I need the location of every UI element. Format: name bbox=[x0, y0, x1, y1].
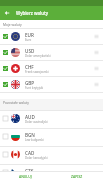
staticText: CHF bbox=[25, 64, 34, 70]
button[interactable]: Back bbox=[0, 6, 14, 20]
staticText: Frank szwajcarski bbox=[25, 70, 49, 74]
staticText: Funt brytyjski bbox=[25, 86, 44, 90]
staticText: Pozostałe waluty bbox=[3, 100, 29, 104]
staticText: AUD bbox=[25, 114, 35, 120]
button[interactable]: ANULUJ bbox=[0, 172, 51, 180]
staticText: ANULUJ bbox=[19, 174, 32, 179]
staticText: Dolar amerykański bbox=[25, 54, 51, 58]
staticText: USD bbox=[25, 48, 35, 54]
staticText: BGN bbox=[25, 132, 35, 138]
staticText: Korona czeska bbox=[25, 174, 45, 178]
staticText: EUR bbox=[25, 32, 34, 38]
button[interactable]: ZAPISZ bbox=[51, 172, 103, 180]
staticText: CAD bbox=[25, 150, 35, 156]
button[interactable]: CHF bbox=[0, 61, 103, 76]
staticText: Lew bułgarski bbox=[25, 138, 44, 142]
button[interactable]: AUD bbox=[0, 111, 103, 128]
button[interactable]: BGN bbox=[0, 129, 103, 146]
staticText: Euro bbox=[25, 38, 32, 42]
button[interactable]: CZK bbox=[0, 165, 103, 182]
staticText: CZK bbox=[25, 168, 34, 174]
staticText: Dolar australijski bbox=[25, 120, 48, 124]
staticText: GBP bbox=[25, 80, 35, 86]
staticText: Wybierz waluty bbox=[16, 10, 48, 16]
staticText: Dolar kanadyjski bbox=[25, 156, 48, 160]
staticText: Moje waluty bbox=[3, 22, 22, 26]
button[interactable]: GBP bbox=[0, 77, 103, 92]
button[interactable]: CAD bbox=[0, 147, 103, 164]
button[interactable]: USD bbox=[0, 45, 103, 60]
staticText: ZAPISZ bbox=[71, 174, 83, 179]
button[interactable]: EUR bbox=[0, 29, 103, 44]
